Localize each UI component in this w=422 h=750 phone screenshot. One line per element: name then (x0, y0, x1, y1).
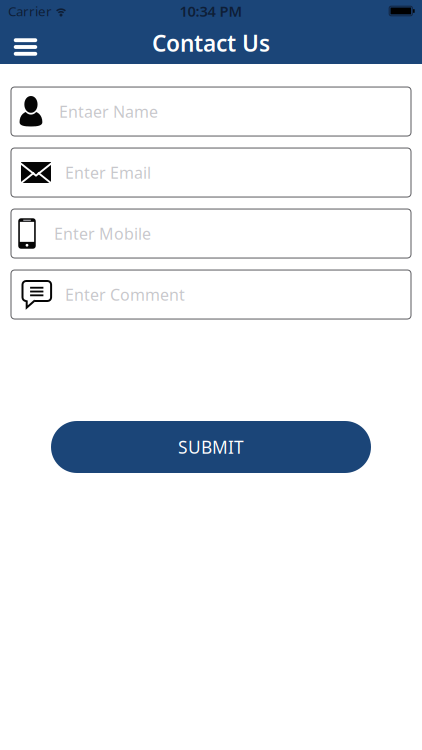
staticText: Enter Comment (65, 284, 185, 305)
button[interactable]: SUBMIT (51, 421, 371, 473)
button[interactable]: Enter Email (11, 148, 411, 197)
button[interactable]: Menu (3, 22, 47, 64)
staticText: Entaer Name (59, 101, 158, 122)
staticText: 10:34 PM (179, 1, 242, 21)
button[interactable]: Enter Mobile (11, 209, 411, 258)
staticText: Enter Email (65, 162, 151, 183)
staticText: Carrier (8, 2, 52, 20)
button[interactable]: Entaer Name (11, 87, 411, 136)
button[interactable]: Enter Comment (11, 270, 411, 319)
staticText: Contact Us (152, 28, 270, 58)
staticText: SUBMIT (178, 435, 244, 458)
staticText: Enter Mobile (54, 223, 151, 244)
